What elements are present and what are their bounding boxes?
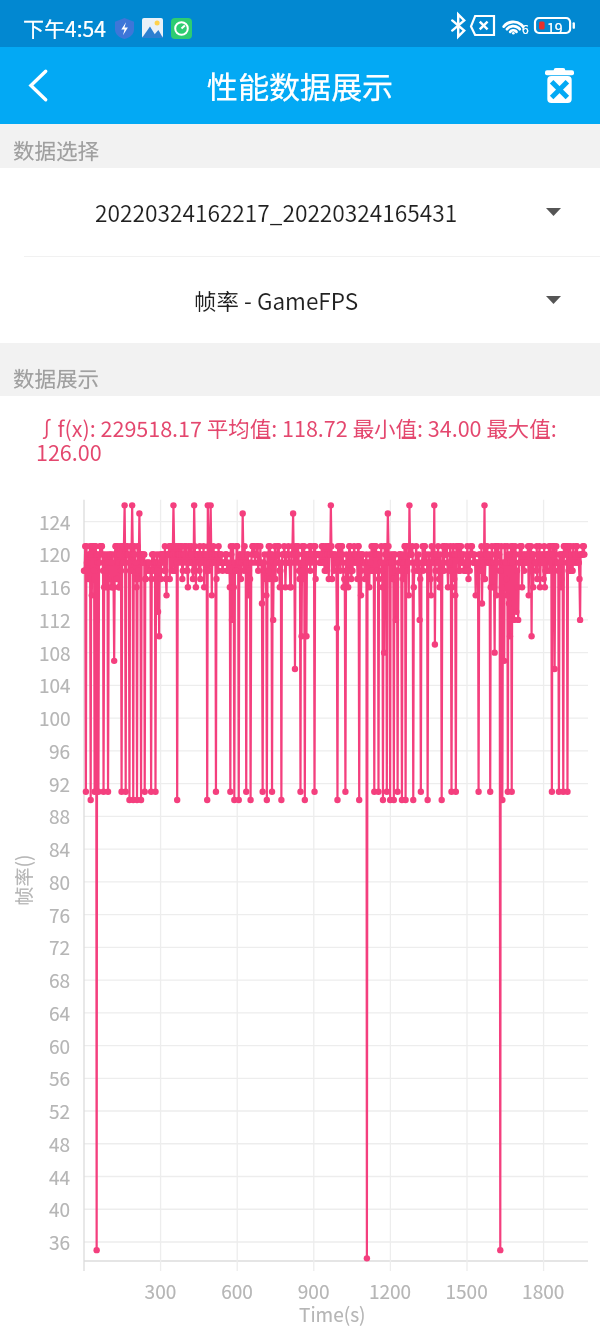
- staticText: 下午4:54: [23, 13, 106, 43]
- staticText: 数据选择: [13, 134, 100, 165]
- staticText: 19: [547, 18, 563, 33]
- staticText: 数据展示: [13, 362, 100, 393]
- staticText: 6: [522, 20, 529, 37]
- button[interactable]: 20220324162217_20220324165431: [0, 168, 600, 256]
- button[interactable]: Delete: [516, 47, 600, 124]
- staticText: 帧率 - GameFPS: [194, 284, 359, 317]
- staticText: 性能数据展示: [207, 63, 393, 108]
- staticText: ∫f(x): 229518.17 平均值: 118.72 最小值: 34.00 …: [36, 412, 573, 467]
- button[interactable]: Back: [0, 47, 76, 124]
- staticText: 20220324162217_20220324165431: [95, 196, 458, 229]
- button[interactable]: 帧率 - GameFPS: [0, 257, 600, 343]
